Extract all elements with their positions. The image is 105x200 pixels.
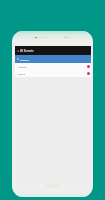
button[interactable]: macro bbox=[15, 70, 91, 77]
staticText: AV Remote bbox=[20, 49, 34, 53]
staticText: macro bbox=[18, 72, 26, 75]
staticText: settings bbox=[20, 58, 29, 61]
staticText: remote bbox=[18, 65, 27, 68]
button[interactable]: remote bbox=[15, 63, 91, 70]
button[interactable]: AV Remote bbox=[15, 46, 91, 55]
button[interactable]: settings bbox=[15, 55, 91, 63]
